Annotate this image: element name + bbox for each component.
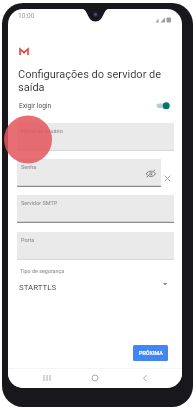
button[interactable]: Senha — [17, 159, 161, 187]
button[interactable]: Exigir login — [8, 95, 182, 117]
staticText: Senha — [21, 164, 37, 170]
button[interactable]: Exigir login — [154, 99, 174, 113]
staticText: Porta — [21, 237, 35, 243]
button[interactable]: Servidor SMTP — [17, 195, 174, 223]
staticText: Tipo de segurança — [20, 268, 65, 274]
button[interactable]: Tipo de segurança — [8, 267, 182, 297]
button[interactable]: PRÓXIMA — [133, 345, 168, 361]
button[interactable]: Recentes — [40, 372, 54, 384]
button[interactable]: Nome de usuário — [17, 123, 174, 151]
button[interactable]: Voltar — [138, 372, 152, 384]
staticText: Servidor SMTP — [21, 200, 58, 206]
button[interactable]: Porta — [17, 232, 174, 260]
staticText: Exigir login — [19, 102, 52, 110]
staticText: 10:00 — [18, 12, 35, 20]
button[interactable]: Início — [88, 372, 102, 384]
button[interactable]: Mostrar senha — [145, 168, 158, 180]
staticText: Configurações do servidor de saída — [18, 68, 174, 94]
button[interactable]: Limpar — [163, 174, 172, 183]
staticText: STARTTLS — [19, 283, 57, 292]
staticText: Nome de usuário — [21, 128, 63, 134]
staticText: PRÓXIMA — [139, 350, 163, 356]
